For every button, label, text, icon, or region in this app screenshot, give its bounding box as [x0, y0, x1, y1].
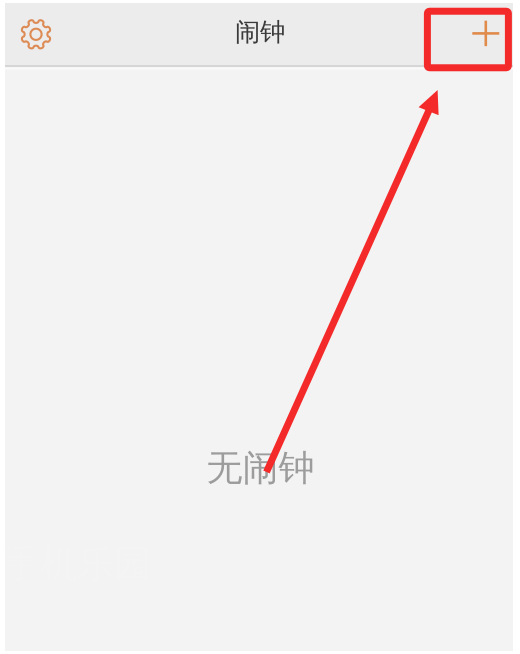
- button[interactable]: Settings: [3, 3, 69, 65]
- button[interactable]: Add alarm: [455, 2, 516, 64]
- staticText: 闹钟: [235, 16, 285, 47]
- staticText: 无闹钟: [206, 446, 314, 490]
